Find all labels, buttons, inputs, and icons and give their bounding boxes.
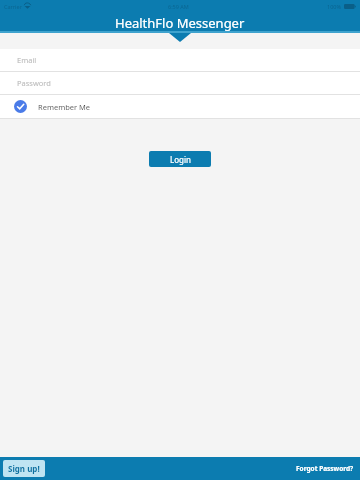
button[interactable]: Forgot Password? [294,461,356,476]
button[interactable]: Login [149,151,211,167]
staticText: HealthFlo Messenger [115,14,245,32]
staticText: Carrier [4,3,22,10]
staticText: Sign up! [8,463,40,474]
staticText: Remember Me [38,102,91,112]
button[interactable]: Password [0,72,360,94]
staticText: 100% [327,3,342,10]
staticText: 6:59 AM [168,3,189,10]
button[interactable]: Email [0,49,360,71]
staticText: Email [17,55,37,65]
button[interactable]: Sign up! [3,460,45,477]
button[interactable]: Remember Me [0,95,360,118]
staticText: Forgot Password? [296,464,354,473]
staticText: Login [170,154,191,165]
staticText: Password [17,78,51,88]
other: Wi-Fi signal [24,3,31,9]
other: Battery full [344,4,356,9]
